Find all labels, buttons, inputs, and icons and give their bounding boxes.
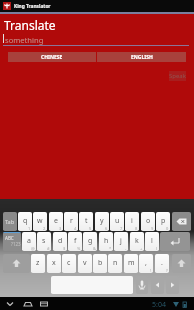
staticText: e bbox=[54, 216, 58, 226]
button[interactable]: g bbox=[83, 232, 97, 251]
staticText: - bbox=[125, 246, 127, 251]
staticText: p bbox=[161, 216, 166, 226]
staticText: t bbox=[85, 216, 88, 226]
button[interactable]: d bbox=[53, 232, 67, 251]
staticText: ( bbox=[156, 246, 158, 251]
staticText: % bbox=[77, 246, 81, 251]
button[interactable]: a bbox=[22, 232, 36, 251]
staticText: h bbox=[104, 236, 109, 246]
staticText: ABC bbox=[5, 235, 14, 241]
staticText: Speak bbox=[169, 72, 186, 80]
staticText: @ bbox=[31, 246, 35, 251]
staticText: ? bbox=[166, 268, 168, 273]
staticText: 3 bbox=[59, 226, 62, 231]
staticText: w bbox=[37, 216, 43, 226]
button[interactable]: j bbox=[114, 232, 128, 251]
staticText: 5 bbox=[89, 226, 92, 231]
button[interactable]: v bbox=[78, 254, 92, 273]
staticText: 5:04 bbox=[152, 300, 166, 310]
staticText: u bbox=[115, 216, 120, 226]
button[interactable]: CHINESE bbox=[8, 52, 96, 62]
button[interactable]: Voice input bbox=[136, 276, 148, 294]
staticText: d bbox=[58, 236, 63, 246]
staticText: 1 bbox=[28, 226, 31, 231]
staticText: b bbox=[98, 258, 103, 268]
button[interactable]: Enter bbox=[160, 232, 190, 251]
staticText: l bbox=[151, 236, 153, 246]
button[interactable]: e bbox=[49, 212, 63, 231]
button[interactable]: n bbox=[108, 254, 122, 273]
staticText: z bbox=[36, 258, 40, 268]
button[interactable]: c bbox=[62, 254, 76, 273]
button[interactable]: b bbox=[93, 254, 107, 273]
staticText: 0 bbox=[166, 226, 169, 231]
button[interactable]: Symbols bbox=[3, 232, 21, 251]
staticText: f bbox=[74, 236, 77, 246]
staticText: x bbox=[52, 258, 56, 268]
button[interactable]: Tab bbox=[3, 212, 17, 231]
staticText: & bbox=[93, 246, 96, 251]
staticText: King Translator bbox=[14, 3, 51, 10]
staticText: j bbox=[120, 236, 122, 246]
button[interactable]: Back bbox=[3, 297, 17, 310]
button[interactable]: k bbox=[130, 232, 144, 251]
button[interactable]: Home bbox=[21, 297, 35, 310]
staticText: n bbox=[113, 258, 118, 268]
staticText: k bbox=[135, 236, 139, 246]
staticText: c bbox=[67, 258, 71, 268]
button[interactable]: w bbox=[33, 212, 47, 231]
staticText: g bbox=[88, 236, 93, 246]
button[interactable]: p bbox=[156, 212, 170, 231]
staticText: q bbox=[23, 216, 28, 226]
staticText: + bbox=[140, 246, 143, 251]
button[interactable]: u bbox=[110, 212, 124, 231]
staticText: Tab bbox=[5, 218, 15, 225]
button[interactable]: l bbox=[145, 232, 159, 251]
button[interactable]: Recents bbox=[37, 297, 51, 310]
staticText: 2 bbox=[43, 226, 46, 231]
button[interactable]: o bbox=[141, 212, 155, 231]
staticText: * bbox=[109, 246, 112, 251]
staticText: a bbox=[27, 236, 31, 246]
button[interactable]: r bbox=[64, 212, 78, 231]
staticText: 4 bbox=[74, 226, 77, 231]
staticText: ?123 bbox=[11, 241, 21, 247]
button[interactable]: Shift bbox=[172, 254, 191, 273]
button[interactable]: z bbox=[31, 254, 45, 273]
staticText: Translate bbox=[4, 17, 56, 33]
staticText: s bbox=[42, 236, 46, 246]
staticText: ENGLISH bbox=[131, 54, 153, 61]
staticText: i bbox=[131, 216, 133, 226]
button[interactable]: Backspace bbox=[172, 212, 191, 231]
button[interactable]: Right bbox=[166, 276, 179, 294]
staticText: 7 bbox=[120, 226, 123, 231]
button[interactable]: h bbox=[99, 232, 113, 251]
staticText: . bbox=[161, 258, 163, 268]
button[interactable]: App icon bbox=[3, 2, 11, 10]
button[interactable]: f bbox=[68, 232, 82, 251]
staticText: $ bbox=[63, 246, 66, 251]
staticText: v bbox=[83, 258, 87, 268]
staticText: o bbox=[146, 216, 151, 226]
button[interactable]: Shift bbox=[3, 254, 30, 273]
button[interactable]: , bbox=[139, 254, 153, 273]
button[interactable]: q bbox=[18, 212, 32, 231]
button[interactable]: y bbox=[95, 212, 109, 231]
staticText: ! bbox=[150, 268, 152, 273]
button[interactable]: Speak bbox=[169, 71, 186, 81]
button[interactable]: m bbox=[124, 254, 138, 273]
staticText: 8 bbox=[135, 226, 138, 231]
button[interactable]: t bbox=[79, 212, 93, 231]
button[interactable]: Left bbox=[151, 276, 164, 294]
button[interactable]: x bbox=[47, 254, 61, 273]
staticText: y bbox=[100, 216, 104, 226]
button[interactable]: i bbox=[125, 212, 139, 231]
button[interactable]: . bbox=[155, 254, 169, 273]
staticText: m bbox=[128, 258, 135, 268]
button[interactable]: s bbox=[37, 232, 51, 251]
staticText: # bbox=[47, 246, 50, 251]
button[interactable]: ENGLISH bbox=[97, 52, 186, 62]
staticText: 9 bbox=[151, 226, 154, 231]
staticText: 6 bbox=[105, 226, 108, 231]
